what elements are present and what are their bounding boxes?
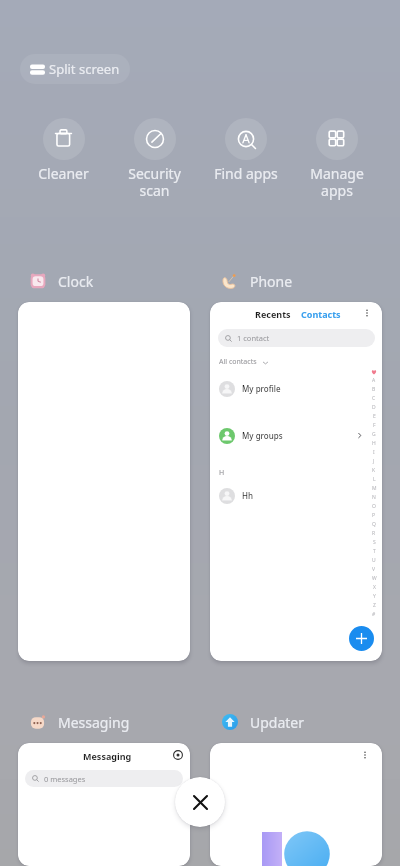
- staticText: All contacts: [219, 357, 257, 367]
- button[interactable]: Alphabet index: [369, 367, 379, 619]
- staticText: Security scan: [128, 164, 181, 200]
- button[interactable]: Cleaner: [18, 118, 109, 183]
- staticText: S: [373, 539, 376, 546]
- staticText: R: [372, 530, 376, 537]
- button[interactable]: Add contact: [349, 626, 374, 651]
- staticText: J: [373, 458, 375, 465]
- staticText: Updater: [250, 713, 305, 732]
- staticText: X: [373, 584, 376, 591]
- staticText: 1 contact: [237, 333, 270, 343]
- staticText: Cleaner: [38, 164, 89, 183]
- button[interactable]: Clock: [30, 267, 94, 295]
- button[interactable]: Manage apps: [291, 118, 382, 200]
- staticText: Manage apps: [310, 164, 364, 200]
- staticText: N: [372, 494, 376, 501]
- staticText: My profile: [242, 383, 281, 394]
- staticText: A: [372, 377, 376, 384]
- button[interactable]: More options: [360, 750, 370, 760]
- button[interactable]: Security scan: [109, 118, 200, 200]
- button[interactable]: Updater: [222, 708, 305, 736]
- button[interactable]: Contacts: [301, 308, 341, 320]
- button[interactable]: Recents: [255, 308, 291, 320]
- staticText: T: [373, 548, 376, 555]
- staticText: F: [373, 422, 376, 429]
- button[interactable]: Phone: [222, 267, 293, 295]
- button[interactable]: Split screen: [20, 54, 130, 84]
- staticText: E: [373, 413, 376, 420]
- button[interactable]: Find apps: [200, 118, 291, 183]
- button[interactable]: More options: [210, 743, 382, 866]
- staticText: U: [372, 557, 376, 564]
- button[interactable]: [18, 302, 190, 661]
- button[interactable]: My groups: [210, 427, 382, 444]
- staticText: W: [372, 575, 377, 582]
- staticText: 0 messages: [44, 774, 86, 784]
- button[interactable]: My profile: [210, 380, 382, 397]
- button[interactable]: More options: [362, 308, 372, 318]
- staticText: L: [373, 476, 376, 483]
- staticText: I: [373, 449, 375, 456]
- staticText: Split screen: [49, 60, 120, 78]
- staticText: M: [372, 485, 377, 492]
- staticText: Messaging: [58, 713, 130, 732]
- staticText: Z: [373, 602, 376, 609]
- button[interactable]: Close all: [175, 777, 225, 827]
- staticText: Phone: [250, 272, 293, 291]
- button[interactable]: 1 contact: [218, 329, 375, 347]
- staticText: Q: [372, 521, 376, 528]
- staticText: #: [372, 611, 376, 618]
- button[interactable]: Messaging: [30, 708, 130, 736]
- staticText: D: [372, 404, 376, 411]
- staticText: C: [372, 395, 376, 402]
- staticText: H: [219, 468, 225, 478]
- staticText: Recents: [255, 308, 291, 320]
- staticText: G: [372, 431, 376, 438]
- button[interactable]: Settings: [173, 750, 183, 760]
- staticText: Clock: [58, 272, 94, 291]
- button[interactable]: Hh: [210, 487, 382, 504]
- staticText: O: [372, 503, 376, 510]
- staticText: Hh: [242, 490, 253, 501]
- staticText: Y: [373, 593, 376, 600]
- button[interactable]: 0 messages: [25, 770, 183, 787]
- staticText: K: [372, 467, 376, 474]
- staticText: My groups: [242, 430, 283, 441]
- staticText: B: [372, 386, 376, 393]
- button[interactable]: Recents: [210, 302, 382, 661]
- staticText: P: [372, 512, 376, 519]
- staticText: V: [372, 566, 376, 573]
- staticText: Messaging: [83, 750, 132, 762]
- staticText: H: [372, 440, 376, 447]
- button[interactable]: All contacts: [219, 357, 269, 367]
- staticText: Find apps: [214, 164, 278, 183]
- button[interactable]: Messaging: [18, 743, 190, 866]
